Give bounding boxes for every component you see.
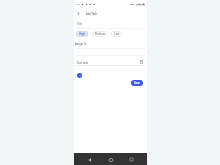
staticText: Low: [114, 32, 120, 36]
button[interactable]: Save: [131, 80, 143, 86]
button[interactable]: Medium: [93, 31, 107, 37]
button[interactable]: Back: [84, 154, 95, 165]
staticText: Due date: [77, 61, 89, 65]
button[interactable]: Recents: [126, 154, 137, 165]
button[interactable]: Home: [105, 154, 116, 165]
staticText: Title: [77, 22, 83, 26]
button[interactable]: High: [76, 31, 88, 37]
button[interactable]: Title: [74, 20, 147, 29]
staticText: Add Task: [86, 12, 98, 16]
staticText: Medium: [95, 32, 106, 36]
staticText: High: [79, 32, 85, 36]
other: Pick date: [140, 60, 143, 64]
button[interactable]: Back: [75, 10, 82, 17]
staticText: Save: [134, 81, 140, 85]
button[interactable]: Due date: [74, 58, 147, 68]
button[interactable]: Low: [111, 31, 122, 37]
staticText: Assign To: [75, 42, 87, 46]
button[interactable]: Add assignee: [77, 73, 82, 78]
